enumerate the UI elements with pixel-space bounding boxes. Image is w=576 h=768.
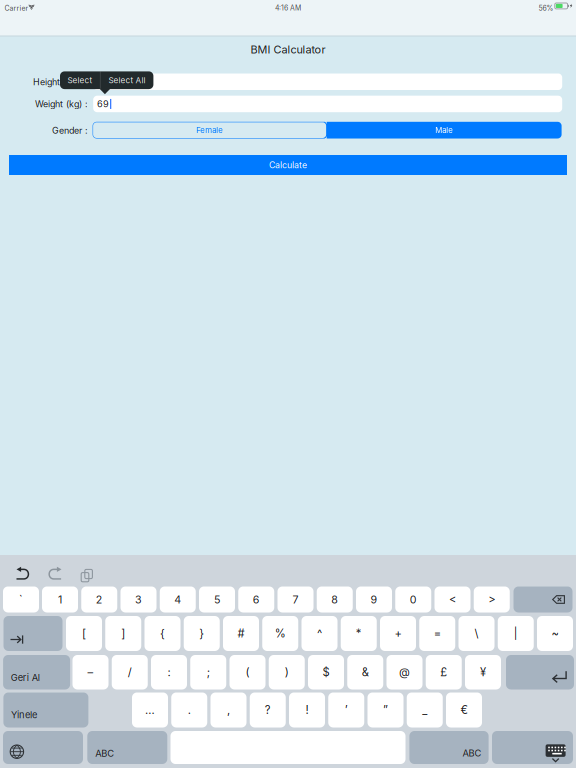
button[interactable]: ABC [409, 731, 489, 764]
button[interactable]: Return [506, 655, 574, 689]
button[interactable]: . [171, 692, 207, 727]
button[interactable]: Delete [513, 586, 572, 612]
staticText: € [460, 703, 467, 717]
staticText: ) [285, 665, 289, 679]
staticText: ~ [551, 627, 558, 640]
button[interactable]: 3 [120, 586, 156, 612]
button[interactable]: / [112, 655, 148, 689]
staticText: ’ [345, 703, 348, 717]
staticText: Gender : [52, 125, 88, 136]
button[interactable]: 9 [356, 586, 392, 612]
staticText: ^ [317, 627, 322, 640]
staticText: @ [399, 665, 410, 679]
button[interactable]: 8 [317, 586, 353, 612]
button[interactable]: Next keyboard [3, 731, 83, 764]
staticText: ? [265, 703, 271, 717]
staticText: Male [435, 125, 453, 135]
button[interactable]: ` [3, 586, 39, 612]
button[interactable]: % [262, 616, 298, 651]
staticText: 5 [214, 593, 220, 606]
staticText: > [488, 593, 495, 606]
staticText: Female [196, 125, 223, 135]
button[interactable]: Male [327, 122, 562, 138]
button[interactable]: 0 [395, 586, 431, 612]
button[interactable]: € [446, 692, 482, 727]
button[interactable]: | [498, 616, 534, 651]
button[interactable]: Geri Al [3, 655, 70, 689]
button[interactable]: … [132, 692, 168, 727]
button[interactable]: [ [66, 616, 102, 651]
staticText: # [237, 627, 244, 640]
button[interactable]: Yinele [3, 692, 88, 727]
staticText: ABC [463, 747, 482, 759]
staticText: 69 [97, 98, 109, 109]
staticText: Select All [108, 75, 145, 85]
button[interactable]: – [72, 655, 108, 689]
button[interactable]: ! [289, 692, 325, 727]
staticText: / [128, 665, 132, 679]
button[interactable]: ~ [537, 616, 573, 651]
button[interactable]: @ [386, 655, 422, 689]
staticText: ] [121, 627, 125, 640]
staticText: Weight (kg) : [35, 99, 88, 109]
button[interactable]: ^ [301, 616, 337, 651]
button[interactable]: 1 [42, 586, 78, 612]
button[interactable]: ; [190, 655, 226, 689]
button[interactable]: { [144, 616, 180, 651]
button[interactable]: Paste [72, 563, 98, 585]
button[interactable]: £ [426, 655, 462, 689]
button[interactable]: ” [367, 692, 403, 727]
staticText: % [275, 627, 286, 640]
staticText: : [167, 665, 170, 679]
button[interactable]: ) [269, 655, 305, 689]
button[interactable]: } [184, 616, 220, 651]
button[interactable]: ( [229, 655, 265, 689]
button[interactable]: * [341, 616, 377, 651]
staticText: 2 [96, 593, 103, 606]
button[interactable]: 7 [277, 586, 313, 612]
button[interactable]: ] [105, 616, 141, 651]
button[interactable]: Redo [42, 563, 68, 585]
button[interactable]: \ [458, 616, 494, 651]
staticText: 3 [135, 593, 142, 606]
button[interactable]: + [380, 616, 416, 651]
button[interactable]: = [419, 616, 455, 651]
button[interactable]: & [347, 655, 383, 689]
staticText: – [87, 665, 93, 679]
button[interactable]: _ [407, 692, 443, 727]
staticText: { [160, 627, 165, 640]
staticText: ¥ [480, 665, 486, 679]
button[interactable]: Space [170, 731, 405, 764]
button[interactable]: $ [308, 655, 344, 689]
button[interactable]: 6 [238, 586, 274, 612]
staticText: [ [82, 627, 86, 640]
button[interactable]: ¥ [465, 655, 501, 689]
staticText: } [199, 627, 204, 640]
button[interactable]: Dismiss keyboard [492, 731, 573, 764]
staticText: | [514, 627, 518, 640]
button[interactable]: Select All [101, 71, 153, 89]
button[interactable]: Undo [10, 563, 36, 585]
staticText: BMI Calculator [250, 43, 325, 56]
button[interactable]: Female [93, 122, 327, 138]
button[interactable]: 4 [160, 586, 196, 612]
staticText: Carrier [4, 4, 28, 12]
button[interactable]: > [474, 586, 510, 612]
button[interactable]: ? [250, 692, 286, 727]
button[interactable]: Tab [3, 616, 62, 651]
button[interactable]: Select [60, 71, 100, 89]
button[interactable]: ABC [87, 731, 167, 764]
button[interactable]: ’ [328, 692, 364, 727]
staticText: \ [474, 627, 478, 640]
button[interactable]: : [151, 655, 187, 689]
button[interactable]: , [210, 692, 246, 727]
button[interactable]: # [223, 616, 259, 651]
staticText: 4 [174, 593, 181, 606]
button[interactable]: 2 [81, 586, 117, 612]
button[interactable]: Calculate [9, 155, 567, 175]
staticText: * [356, 627, 362, 640]
staticText: 9 [370, 593, 377, 606]
button[interactable]: < [434, 586, 470, 612]
staticText: 6 [253, 593, 260, 606]
button[interactable]: 5 [199, 586, 235, 612]
